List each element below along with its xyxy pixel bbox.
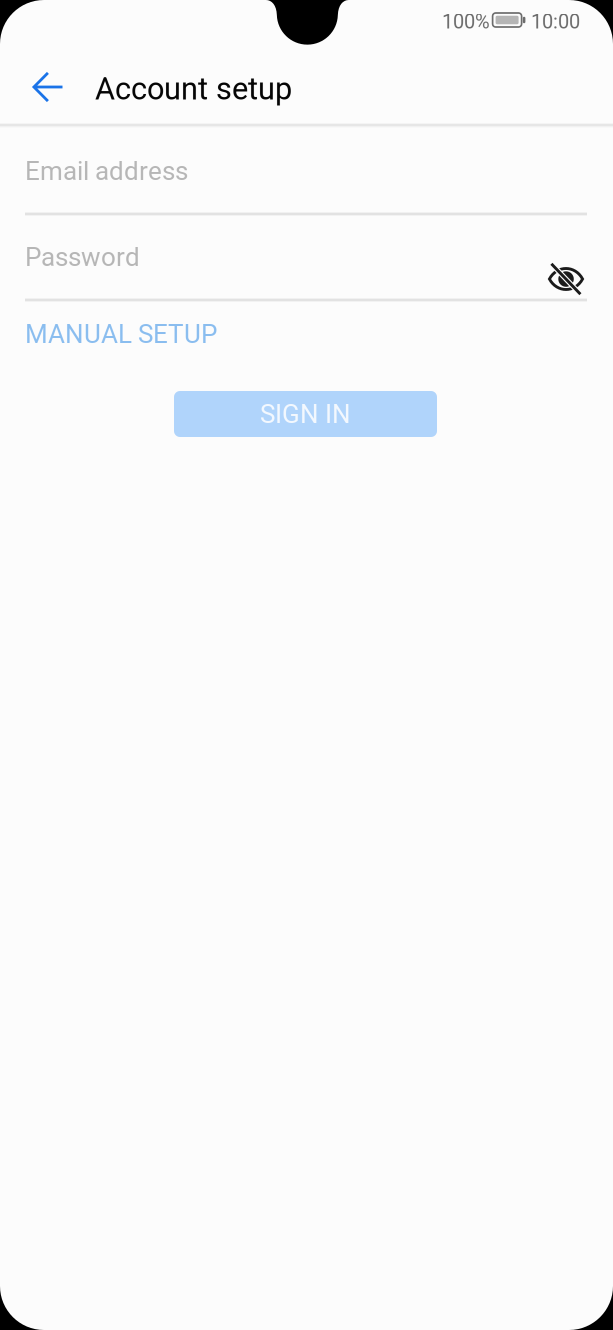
staticText: 100% xyxy=(442,10,490,33)
staticText: Password xyxy=(25,242,140,272)
staticText: Email address xyxy=(25,156,188,186)
button[interactable]: Back xyxy=(0,56,96,118)
staticText: SIGN IN xyxy=(260,399,351,429)
button[interactable]: Show password xyxy=(538,251,594,307)
staticText: MANUAL SETUP xyxy=(25,319,217,349)
staticText: Account setup xyxy=(95,71,292,107)
button[interactable]: MANUAL SETUP xyxy=(25,316,225,352)
staticText: 10:00 xyxy=(531,10,580,33)
button[interactable]: SIGN IN xyxy=(174,391,437,437)
